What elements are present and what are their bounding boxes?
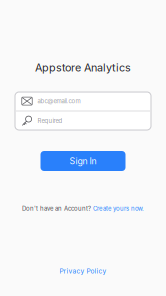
button[interactable]: Create yours now. <box>93 205 144 212</box>
staticText: abc@email.com <box>37 97 80 105</box>
staticText: Privacy Policy <box>59 267 106 275</box>
button[interactable]: Privacy Policy <box>59 267 106 275</box>
staticText: Create yours now. <box>93 205 144 212</box>
staticText: Appstore Analytics <box>35 61 131 74</box>
button[interactable]: Sign In <box>40 151 125 171</box>
staticText: Sign In <box>69 156 96 166</box>
staticText: Required <box>37 117 62 125</box>
staticText: Don't have an Account? <box>22 205 91 212</box>
